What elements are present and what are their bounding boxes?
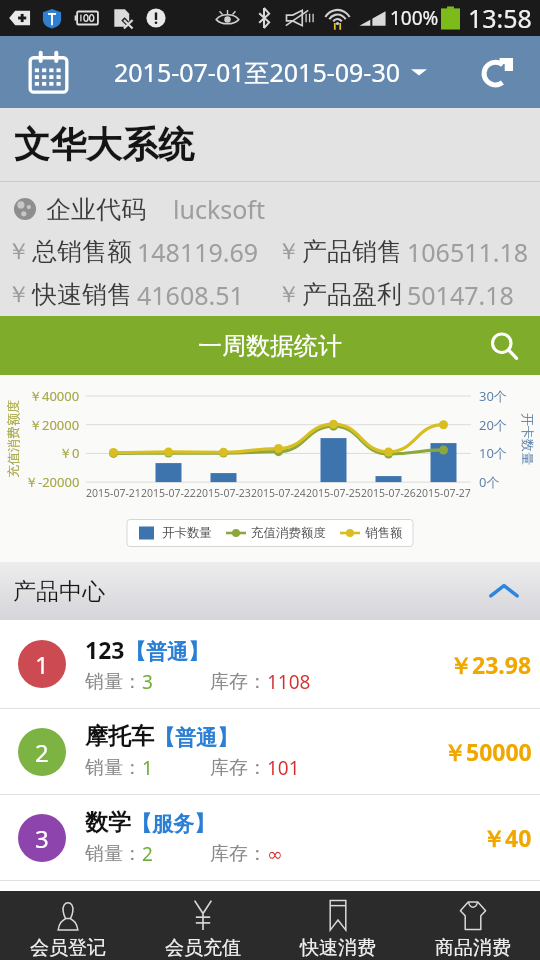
staticText: 销量：: [85, 756, 142, 780]
staticText: ￥: [277, 237, 300, 266]
staticText: 148119.69: [137, 235, 259, 269]
button[interactable]: 快速消费: [270, 891, 405, 960]
staticText: 快速消费: [300, 936, 376, 960]
staticText: 101: [267, 755, 300, 781]
staticText: 摩托车: [85, 722, 154, 751]
staticText: 一周数据统计: [198, 331, 342, 361]
staticText: 产品销售: [302, 236, 402, 267]
button[interactable]: Select date: [22, 46, 74, 98]
button[interactable]: Search: [482, 324, 526, 368]
button[interactable]: 2015-07-01至2015-09-30: [110, 51, 431, 93]
staticText: 100%: [390, 5, 439, 31]
button[interactable]: 2: [0, 709, 540, 795]
staticText: 文华大系统: [14, 122, 194, 167]
staticText: 2: [142, 841, 153, 867]
staticText: 【服务】: [131, 811, 215, 837]
staticText: 41608.51: [137, 278, 244, 312]
staticText: ￥: [7, 237, 30, 266]
staticText: 1: [142, 755, 153, 781]
staticText: 数学: [85, 808, 131, 837]
staticText: ￥23.98: [449, 649, 532, 680]
button[interactable]: Refresh: [472, 46, 524, 98]
staticText: 产品盈利: [302, 279, 402, 310]
staticText: 企业代码: [46, 194, 146, 225]
button[interactable]: 1: [0, 620, 540, 709]
staticText: 会员充值: [165, 936, 241, 960]
button[interactable]: 会员登记: [0, 891, 135, 960]
button[interactable]: 商品消费: [405, 891, 540, 960]
staticText: 1108: [267, 669, 311, 695]
staticText: ￥40: [482, 822, 532, 853]
staticText: 销量：: [85, 670, 142, 694]
staticText: 【普通】: [154, 725, 238, 751]
staticText: ￥: [7, 280, 30, 309]
staticText: 会员登记: [30, 936, 106, 960]
staticText: 总销售额: [32, 236, 132, 267]
other: Collapse: [486, 573, 522, 609]
staticText: 库存：: [210, 756, 267, 780]
staticText: 库存：: [210, 842, 267, 866]
staticText: ￥50000: [443, 736, 532, 767]
staticText: 13:58: [468, 1, 532, 35]
staticText: 3: [142, 669, 153, 695]
button[interactable]: 会员充值: [135, 891, 270, 960]
staticText: 106511.18: [407, 235, 529, 269]
staticText: 商品消费: [435, 936, 511, 960]
staticText: 1: [35, 648, 49, 681]
staticText: ∞: [267, 843, 283, 865]
staticText: 【普通】: [125, 639, 209, 665]
staticText: 库存：: [210, 670, 267, 694]
staticText: 销量：: [85, 842, 142, 866]
staticText: 3: [35, 822, 49, 855]
button[interactable]: 产品中心: [0, 562, 540, 620]
staticText: 50147.18: [407, 278, 514, 312]
staticText: 2015-07-01至2015-09-30: [114, 55, 401, 89]
button[interactable]: 3: [0, 795, 540, 881]
staticText: ￥: [277, 280, 300, 309]
staticText: lucksoft: [173, 192, 265, 226]
staticText: 2: [35, 736, 49, 769]
staticText: 123: [85, 634, 125, 665]
staticText: 快速销售: [32, 279, 132, 310]
staticText: 产品中心: [13, 577, 105, 606]
